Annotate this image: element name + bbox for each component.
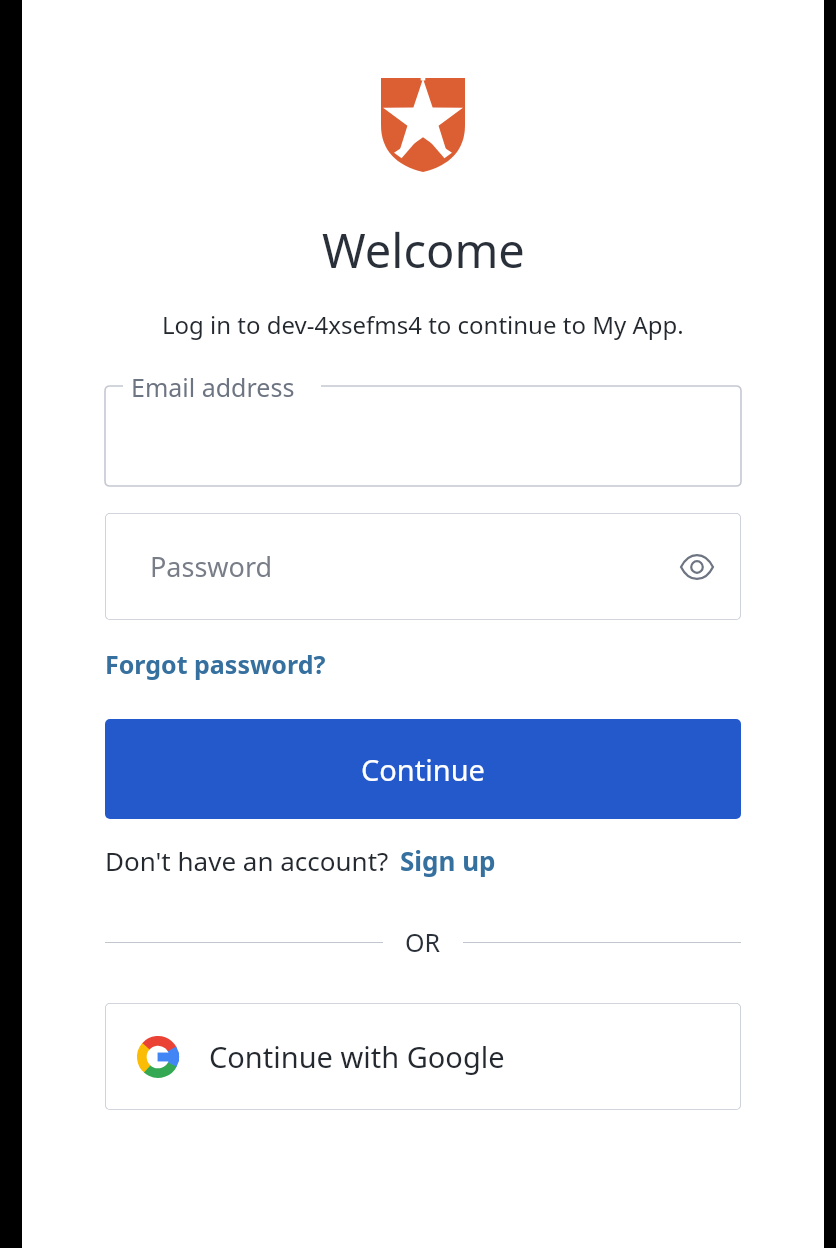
button[interactable]: Show password [675,545,719,589]
button[interactable]: Sign up [400,843,496,878]
staticText: Email address [131,370,295,404]
staticText: Continue [361,750,485,789]
staticText: Continue with Google [209,1037,505,1076]
staticText: Sign up [400,843,496,878]
staticText: Password [150,548,273,585]
staticText: Forgot password? [105,647,326,681]
button[interactable]: Forgot password? [105,647,326,681]
staticText: OR [405,925,441,959]
button[interactable]: Email address [105,386,741,486]
button[interactable]: Password [105,513,741,620]
staticText: Log in to dev-4xsefms4 to continue to My… [162,308,684,341]
button[interactable]: Continue [105,719,741,819]
staticText: Welcome [322,218,525,282]
button[interactable]: Continue with Google [105,1003,741,1110]
staticText: Don't have an account? [105,843,389,878]
